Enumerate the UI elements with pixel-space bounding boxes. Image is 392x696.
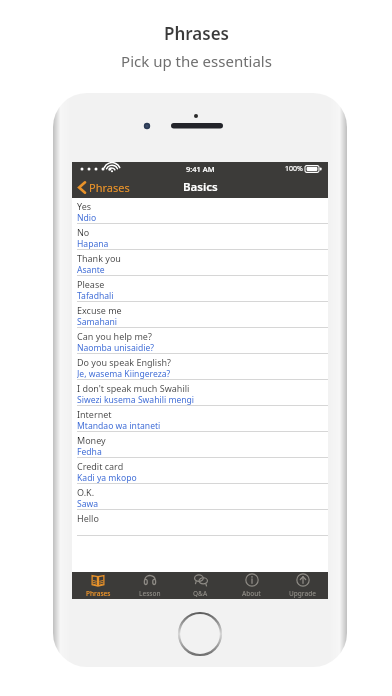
staticText: Mtandao wa intaneti: [77, 420, 161, 431]
staticText: Excuse me: [77, 304, 122, 316]
staticText: Hello: [77, 512, 99, 524]
staticText: No: [77, 226, 90, 238]
staticText: O.K.: [77, 486, 95, 498]
staticText: Asante: [77, 264, 105, 275]
button[interactable]: Excuse me: [72, 302, 328, 327]
button[interactable]: Internet: [72, 406, 328, 431]
staticText: Fedha: [77, 446, 102, 457]
staticText: Tafadhali: [77, 290, 114, 301]
button[interactable]: Please: [72, 276, 328, 301]
staticText: 9:41 AM: [186, 164, 215, 174]
staticText: Basics: [183, 179, 218, 195]
button[interactable]: Money: [72, 432, 328, 457]
staticText: 100%: [285, 164, 303, 174]
staticText: Q&A: [193, 589, 208, 598]
staticText: Upgrade: [289, 589, 316, 598]
button[interactable]: O.K.: [72, 484, 328, 509]
staticText: Phrases: [86, 589, 111, 598]
staticText: Internet: [77, 408, 112, 420]
staticText: Samahani: [77, 316, 118, 327]
button[interactable]: Thank you: [72, 250, 328, 275]
staticText: Naomba unisaidie?: [77, 342, 155, 353]
button[interactable]: Credit card: [72, 458, 328, 483]
staticText: Yes: [77, 200, 92, 212]
button[interactable]: Q&A: [175, 572, 226, 599]
button[interactable]: Lesson: [124, 572, 175, 599]
staticText: Ndio: [77, 212, 97, 223]
button[interactable]: About: [226, 572, 277, 599]
staticText: Please: [77, 278, 105, 290]
button[interactable]: Upgrade: [277, 572, 328, 599]
staticText: Pick up the essentials: [121, 51, 272, 71]
button[interactable]: Phrases: [72, 176, 138, 198]
button[interactable]: I don't speak much Swahili: [72, 380, 328, 405]
button[interactable]: Hello: [72, 510, 328, 535]
staticText: Money: [77, 434, 106, 446]
staticText: Can you help me?: [77, 330, 152, 342]
staticText: Credit card: [77, 460, 124, 472]
staticText: About: [242, 589, 261, 598]
button[interactable]: No: [72, 224, 328, 249]
button[interactable]: Phrases: [72, 572, 124, 599]
staticText: Siwezi kusema Swahili mengi: [77, 394, 195, 405]
button[interactable]: Do you speak English?: [72, 354, 328, 379]
staticText: Do you speak English?: [77, 356, 171, 368]
staticText: Lesson: [139, 589, 161, 598]
staticText: I don't speak much Swahili: [77, 382, 190, 394]
staticText: Phrases: [164, 22, 229, 45]
staticText: Je, wasema Kiingereza?: [77, 368, 171, 379]
button[interactable]: Can you help me?: [72, 328, 328, 353]
staticText: Phrases: [89, 180, 130, 195]
button[interactable]: Yes: [72, 198, 328, 223]
staticText: Sawa: [77, 498, 99, 509]
staticText: Thank you: [77, 252, 121, 264]
staticText: Kadi ya mkopo: [77, 472, 137, 483]
staticText: Hapana: [77, 238, 109, 249]
